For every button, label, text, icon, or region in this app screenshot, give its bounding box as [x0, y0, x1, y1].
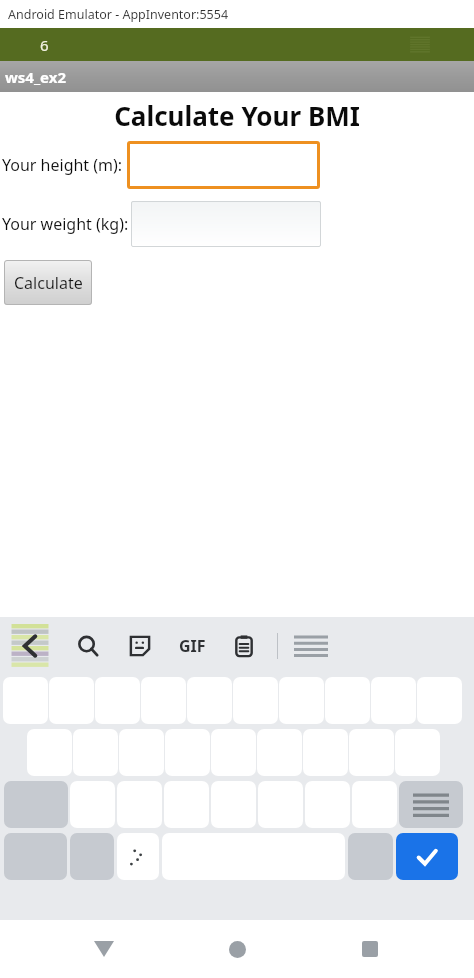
button[interactable]: Shift — [4, 781, 68, 828]
button[interactable]: Comma — [70, 833, 114, 880]
button[interactable]: Key — [165, 729, 210, 776]
button[interactable]: Key — [119, 729, 164, 776]
button[interactable]: Backspace — [399, 781, 463, 828]
button[interactable]: Settings — [294, 633, 328, 659]
other: Status icons — [407, 34, 433, 56]
staticText: ws4_ex2 — [5, 67, 67, 87]
staticText: Android Emulator - AppInventor:5554 — [8, 6, 229, 23]
button[interactable] — [127, 141, 320, 189]
button[interactable]: Key — [3, 677, 48, 724]
button[interactable]: Key — [305, 781, 350, 828]
button[interactable]: Home — [208, 920, 266, 978]
button[interactable]: Key — [417, 677, 462, 724]
button[interactable]: Key — [233, 677, 278, 724]
staticText: 6 — [40, 35, 49, 55]
button[interactable]: Enter — [396, 833, 458, 880]
button[interactable]: Key — [117, 781, 162, 828]
staticText: Your height (m): — [2, 154, 123, 176]
button[interactable]: Key — [258, 781, 303, 828]
button[interactable]: Key — [211, 781, 256, 828]
button[interactable]: Key — [27, 729, 72, 776]
button[interactable]: Symbols — [4, 833, 67, 880]
button[interactable]: Calculate — [4, 260, 92, 305]
button[interactable]: Stickers — [125, 631, 155, 661]
staticText: Your weight (kg): — [2, 213, 129, 235]
button[interactable]: Key — [303, 729, 348, 776]
button[interactable]: Key — [371, 677, 416, 724]
button[interactable]: Recent apps — [341, 920, 399, 978]
button[interactable]: Key — [349, 729, 394, 776]
button[interactable] — [131, 201, 321, 247]
button[interactable]: Search — [73, 631, 103, 661]
button[interactable]: Key — [164, 781, 209, 828]
button[interactable]: Key — [73, 729, 118, 776]
button[interactable]: Key — [141, 677, 186, 724]
button[interactable]: Key — [70, 781, 115, 828]
button[interactable]: Period — [348, 833, 393, 880]
staticText: GIF — [179, 635, 206, 657]
staticText: Calculate Your BMI — [114, 98, 360, 133]
button[interactable]: GIF — [177, 631, 207, 661]
button[interactable]: Key — [95, 677, 140, 724]
button[interactable]: Back — [8, 624, 52, 668]
button[interactable]: Key — [187, 677, 232, 724]
button[interactable]: Key — [257, 729, 302, 776]
button[interactable]: Key — [325, 677, 370, 724]
staticText: Calculate — [14, 272, 83, 294]
button[interactable]: Key — [395, 729, 440, 776]
button[interactable]: Key — [352, 781, 397, 828]
button[interactable]: Key — [211, 729, 256, 776]
button[interactable]: Key — [279, 677, 324, 724]
button[interactable]: Clipboard — [229, 631, 259, 661]
button[interactable]: Key — [49, 677, 94, 724]
button[interactable]: Emoji — [117, 833, 159, 880]
button[interactable]: Back — [75, 920, 133, 978]
